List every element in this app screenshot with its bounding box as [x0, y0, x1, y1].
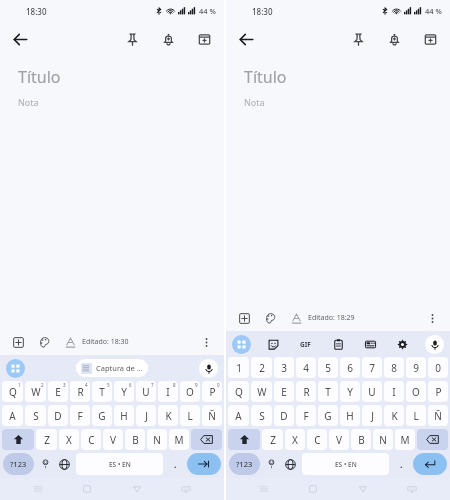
button[interactable]: F — [70, 405, 90, 426]
button[interactable]: R — [70, 381, 90, 402]
button[interactable]: I — [158, 381, 178, 402]
button[interactable]: ?123 — [3, 453, 34, 475]
button[interactable]: O — [180, 381, 200, 402]
button[interactable]: D — [274, 405, 294, 426]
button[interactable]: H — [114, 405, 134, 426]
button[interactable]: J — [362, 405, 382, 426]
button[interactable]: Keyboard tools — [232, 335, 251, 354]
button[interactable]: . — [392, 453, 410, 475]
button[interactable]: Shift — [2, 429, 34, 450]
button[interactable]: Back — [6, 25, 34, 53]
button[interactable]: Format — [60, 332, 80, 352]
button[interactable]: Home — [302, 478, 324, 500]
button[interactable]: Z — [262, 429, 283, 450]
button[interactable]: Reminder — [156, 27, 180, 51]
button[interactable]: B — [351, 429, 371, 450]
button[interactable]: U — [362, 381, 382, 402]
button[interactable]: 6 — [340, 357, 360, 378]
button[interactable]: ES • EN — [76, 453, 163, 475]
button[interactable]: Change language — [56, 453, 73, 475]
button[interactable]: K — [384, 405, 404, 426]
button[interactable]: P — [428, 381, 448, 402]
button[interactable]: K — [158, 405, 178, 426]
button[interactable]: R — [296, 381, 316, 402]
button[interactable]: G — [92, 405, 112, 426]
button[interactable]: Voice input — [199, 359, 218, 378]
button[interactable]: Settings — [393, 335, 412, 354]
button[interactable]: Pin — [120, 27, 144, 51]
button[interactable]: 2 — [251, 357, 272, 378]
button[interactable]: L — [406, 405, 426, 426]
button[interactable]: G — [318, 405, 338, 426]
button[interactable]: V — [103, 429, 123, 450]
button[interactable]: Add — [234, 308, 254, 328]
button[interactable]: W — [251, 381, 272, 402]
button[interactable]: Ñ — [428, 405, 448, 426]
button[interactable]: T — [318, 381, 338, 402]
button[interactable]: S — [25, 405, 46, 426]
button[interactable]: Back — [232, 25, 260, 53]
button[interactable]: 9 — [406, 357, 426, 378]
button[interactable]: Stickers — [264, 335, 283, 354]
button[interactable]: Captura de ... — [76, 359, 148, 377]
button[interactable]: Recents — [253, 478, 275, 500]
button[interactable]: E — [274, 381, 294, 402]
button[interactable]: Archive — [192, 27, 216, 51]
button[interactable]: Y — [340, 381, 360, 402]
button[interactable]: ?123 — [229, 453, 260, 475]
button[interactable]: Archive — [418, 27, 442, 51]
button[interactable]: Ñ — [202, 405, 222, 426]
button[interactable]: Hide keyboard — [175, 478, 197, 500]
button[interactable]: Pin — [346, 27, 370, 51]
button[interactable]: T — [92, 381, 112, 402]
button[interactable]: P — [202, 381, 222, 402]
button[interactable]: 4 — [296, 357, 316, 378]
button[interactable]: N — [373, 429, 393, 450]
button[interactable]: Recents — [27, 478, 49, 500]
button[interactable]: D — [48, 405, 68, 426]
button[interactable]: Y — [114, 381, 134, 402]
button[interactable]: Z — [36, 429, 57, 450]
button[interactable]: C — [81, 429, 101, 450]
button[interactable]: Add — [8, 332, 28, 352]
button[interactable]: 7 — [362, 357, 382, 378]
button[interactable]: Change language — [282, 453, 299, 475]
button[interactable]: ES • EN — [302, 453, 389, 475]
button[interactable]: 1 — [228, 357, 249, 378]
button[interactable]: Back — [126, 478, 148, 500]
button[interactable]: Enter — [413, 453, 447, 475]
button[interactable]: Keyboard tools — [6, 359, 25, 378]
button[interactable]: Backspace — [191, 429, 222, 450]
button[interactable]: Format — [286, 308, 306, 328]
button[interactable]: X — [59, 429, 79, 450]
button[interactable]: Enter — [187, 453, 221, 475]
button[interactable]: M — [169, 429, 189, 450]
button[interactable]: A — [228, 405, 249, 426]
button[interactable]: V — [329, 429, 349, 450]
button[interactable]: 0 — [428, 357, 448, 378]
button[interactable]: Home — [76, 478, 98, 500]
button[interactable]: X — [285, 429, 305, 450]
button[interactable]: Shift — [228, 429, 260, 450]
button[interactable]: Clipboard — [329, 335, 348, 354]
button[interactable]: Palette — [34, 332, 54, 352]
button[interactable]: F — [296, 405, 316, 426]
button[interactable]: . — [166, 453, 184, 475]
button[interactable]: E — [48, 381, 68, 402]
button[interactable]: Reminder — [382, 27, 406, 51]
button[interactable]: L — [180, 405, 200, 426]
button[interactable]: Q — [228, 381, 249, 402]
button[interactable]: H — [340, 405, 360, 426]
button[interactable]: Voice input — [425, 335, 444, 354]
button[interactable]: More options — [422, 308, 442, 328]
button[interactable]: More options — [196, 332, 216, 352]
button[interactable]: Backspace — [417, 429, 448, 450]
button[interactable]: A — [2, 405, 23, 426]
button[interactable]: Back — [352, 478, 374, 500]
button[interactable]: Palette — [260, 308, 280, 328]
button[interactable]: Emoji and comma — [37, 453, 53, 475]
button[interactable]: I — [384, 381, 404, 402]
button[interactable]: Emoji and comma — [263, 453, 279, 475]
button[interactable]: S — [251, 405, 272, 426]
button[interactable]: GIF — [296, 335, 315, 354]
